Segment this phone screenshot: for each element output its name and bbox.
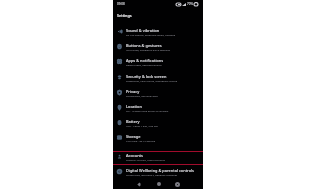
button[interactable]: Privacy xyxy=(113,85,203,100)
button[interactable]: Storage xyxy=(113,130,203,145)
staticText: OnePlus Account, other accounts xyxy=(126,158,165,161)
staticText: Default apps, app permissions xyxy=(126,63,162,66)
staticText: Apps & notifications xyxy=(126,58,164,63)
button[interactable]: Accounts xyxy=(113,149,203,164)
staticText: Privacy xyxy=(126,89,140,94)
staticText: Permissions, personal data xyxy=(126,94,158,97)
staticText: Settings xyxy=(117,13,132,18)
staticText: Location xyxy=(126,104,142,109)
button[interactable]: Battery xyxy=(113,115,203,130)
staticText: Storage xyxy=(126,134,141,139)
staticText: Buttons & gestures xyxy=(126,43,162,48)
button[interactable]: Digital Wellbeing & parental controls xyxy=(113,164,203,179)
staticText: 09:08 xyxy=(117,2,125,6)
staticText: Security & lock screen xyxy=(126,74,167,79)
staticText: Digital Wellbeing & parental controls xyxy=(126,168,194,173)
staticText: Do Not Disturb, earphone mode, ringtone xyxy=(126,33,176,36)
button[interactable]: Apps & notifications xyxy=(113,54,203,69)
staticText: Screen time, app timers, bedtime schedul… xyxy=(126,173,178,176)
button[interactable]: Sound & vibration xyxy=(113,24,203,39)
staticText: 70% xyxy=(187,2,193,6)
staticText: 70% - About 1 day, 4:09 left xyxy=(126,124,158,127)
button[interactable]: Back xyxy=(130,179,149,189)
button[interactable]: Location xyxy=(113,100,203,115)
staticText: On - 10 apps have access to location xyxy=(126,109,169,112)
staticText: Battery xyxy=(126,119,140,124)
button[interactable]: Recents xyxy=(168,179,187,189)
staticText: Accounts xyxy=(126,153,143,158)
staticText: 37% used - 80.14 GB free xyxy=(126,139,156,142)
button[interactable]: Buttons & gestures xyxy=(113,39,203,54)
button[interactable]: Security & lock screen xyxy=(113,70,203,85)
staticText: Fingerprint, Face unlock, emergency resc… xyxy=(126,79,178,82)
staticText: Sound & vibration xyxy=(126,28,160,33)
button[interactable]: Home xyxy=(149,179,168,189)
staticText: Alert Slider, navigation bar & gestures xyxy=(126,48,171,51)
